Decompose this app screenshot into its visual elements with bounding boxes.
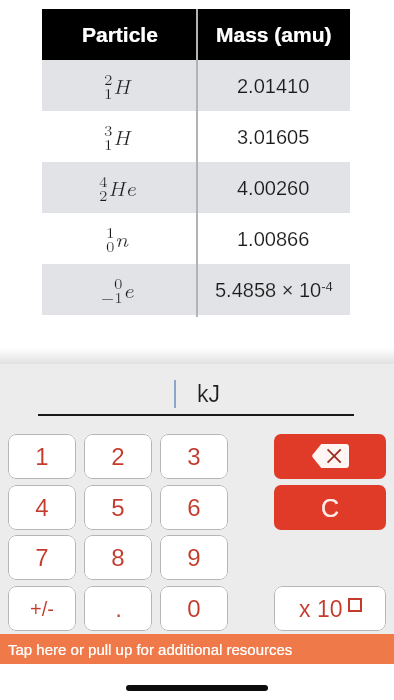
staticText: kJ	[197, 381, 220, 407]
staticText: 6	[187, 494, 201, 521]
button[interactable]: 2	[84, 434, 152, 479]
staticText: 0	[114, 272, 123, 293]
staticText: Mass (amu)	[216, 23, 332, 46]
button[interactable]: 6	[160, 485, 228, 530]
staticText: 1	[35, 443, 49, 470]
button[interactable]: 7	[8, 535, 76, 580]
staticText: 3	[104, 119, 113, 140]
button[interactable]: Backspace	[274, 434, 386, 479]
button[interactable]: 0	[160, 586, 228, 631]
staticText: +/-	[30, 598, 54, 620]
staticText: 2.01410	[237, 75, 310, 97]
button[interactable]: 3	[160, 434, 228, 479]
staticText: .	[115, 595, 122, 622]
staticText: 3	[187, 443, 201, 470]
staticText: 2	[111, 443, 125, 470]
staticText: He	[108, 174, 137, 202]
staticText: 3.01605	[237, 126, 310, 148]
staticText: 1	[106, 221, 115, 242]
staticText: 4.00260	[237, 177, 310, 199]
staticText: 4	[99, 170, 108, 191]
staticText: 7	[35, 544, 49, 571]
button[interactable]: C	[274, 485, 386, 530]
button[interactable]: 9	[160, 535, 228, 580]
staticText: 4	[35, 494, 49, 521]
button[interactable]: .	[84, 586, 152, 631]
button[interactable]: Tap here or pull up for additional resou…	[0, 634, 394, 664]
staticText: Particle	[82, 23, 158, 46]
staticText: 5	[111, 494, 125, 521]
staticText: 0	[187, 595, 201, 622]
staticText: H	[113, 72, 131, 100]
staticText: 1.00866	[237, 228, 310, 250]
staticText: 2	[104, 68, 113, 89]
button[interactable]: 8	[84, 535, 152, 580]
staticText: x 10	[299, 596, 343, 622]
staticText: H	[113, 123, 131, 151]
staticText: C	[321, 494, 340, 522]
staticText: n	[115, 225, 129, 253]
staticText: 2	[99, 184, 108, 205]
staticText: 1	[104, 82, 113, 103]
staticText: e	[123, 276, 134, 304]
button[interactable]: +/-	[8, 586, 76, 631]
staticText: 9	[187, 544, 201, 571]
staticText: 1	[104, 133, 113, 154]
staticText: −1	[101, 286, 123, 307]
button[interactable]: 5	[84, 485, 152, 530]
button[interactable]: x 10	[274, 586, 386, 631]
button[interactable]: 4	[8, 485, 76, 530]
staticText: 0	[106, 235, 115, 256]
button[interactable]: 1	[8, 434, 76, 479]
staticText: 8	[111, 544, 125, 571]
staticText: Tap here or pull up for additional resou…	[8, 641, 293, 658]
staticText: 5.4858 × 10-4	[215, 279, 333, 301]
